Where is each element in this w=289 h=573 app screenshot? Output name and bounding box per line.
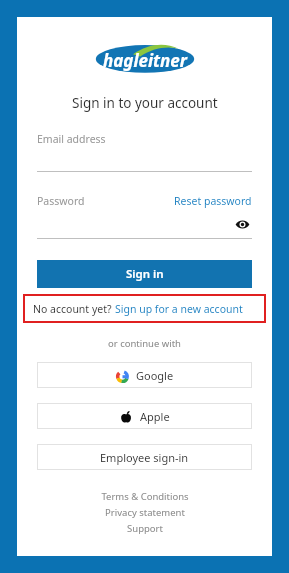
staticText: Reset password	[174, 194, 252, 208]
staticText: hagleitner	[103, 49, 187, 72]
staticText: Employee sign-in	[100, 450, 189, 465]
staticText: Apple	[140, 409, 170, 424]
button[interactable]: Sign in	[37, 260, 252, 288]
staticText: Sign in to your account	[72, 94, 218, 112]
staticText: Sign up for a new account	[115, 302, 243, 316]
staticText: or continue with	[108, 337, 181, 350]
staticText: Password	[37, 194, 85, 208]
staticText: Terms & Conditions	[101, 490, 189, 503]
button[interactable]: No account yet?	[33, 302, 256, 316]
button[interactable]: Support	[127, 522, 163, 535]
button[interactable]: Reset password	[174, 194, 252, 208]
staticText: Support	[127, 522, 163, 535]
staticText: Privacy statement	[105, 506, 185, 519]
staticText: Sign in	[126, 266, 164, 282]
button[interactable]: Privacy statement	[105, 506, 185, 519]
button[interactable]: Email address	[37, 132, 252, 172]
button[interactable]: Google	[37, 362, 252, 388]
button[interactable]: Employee sign-in	[37, 444, 252, 470]
staticText: No account yet?	[33, 302, 115, 316]
button[interactable]: Apple	[37, 403, 252, 429]
staticText: Google	[136, 368, 174, 383]
button[interactable]: Show password	[232, 214, 252, 234]
staticText: Email address	[37, 132, 106, 146]
button[interactable]: Terms & Conditions	[101, 490, 189, 503]
